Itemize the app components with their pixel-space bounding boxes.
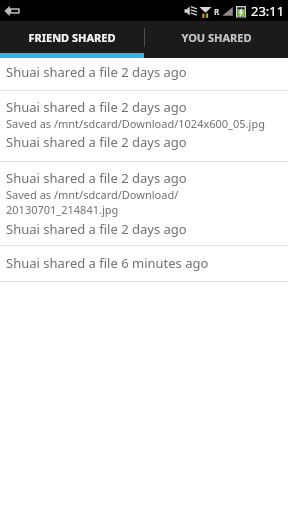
button[interactable]: YOU SHARED xyxy=(144,21,288,53)
button[interactable]: FRIEND SHARED xyxy=(0,21,144,53)
button[interactable]: Back xyxy=(2,2,22,20)
button[interactable]: Shuai shared a file 2 days ago xyxy=(0,162,288,218)
staticText: 23:11 xyxy=(251,2,285,20)
staticText: Saved as /mnt/sdcard/Download/1024x600_0… xyxy=(6,116,265,131)
button[interactable]: Shuai shared a file 2 days ago xyxy=(0,91,288,131)
staticText: Shuai shared a file 2 days ago xyxy=(6,220,187,238)
button[interactable]: Shuai shared a file 6 minutes ago xyxy=(0,246,288,281)
button[interactable]: Shuai shared a file 2 days ago xyxy=(0,131,288,161)
staticText: FRIEND SHARED xyxy=(28,30,116,45)
staticText: Shuai shared a file 2 days ago xyxy=(6,63,187,81)
staticText: Shuai shared a file 2 days ago xyxy=(6,169,187,187)
button[interactable]: Shuai shared a file 2 days ago xyxy=(0,58,288,90)
staticText: R xyxy=(214,6,220,17)
staticText: Saved as /mnt/sdcard/Download/20130701_2… xyxy=(6,187,282,217)
staticText: Shuai shared a file 6 minutes ago xyxy=(6,254,209,272)
staticText: YOU SHARED xyxy=(181,30,252,45)
button[interactable]: Shuai shared a file 2 days ago xyxy=(0,218,288,245)
staticText: Shuai shared a file 2 days ago xyxy=(6,133,187,151)
staticText: Shuai shared a file 2 days ago xyxy=(6,98,187,116)
